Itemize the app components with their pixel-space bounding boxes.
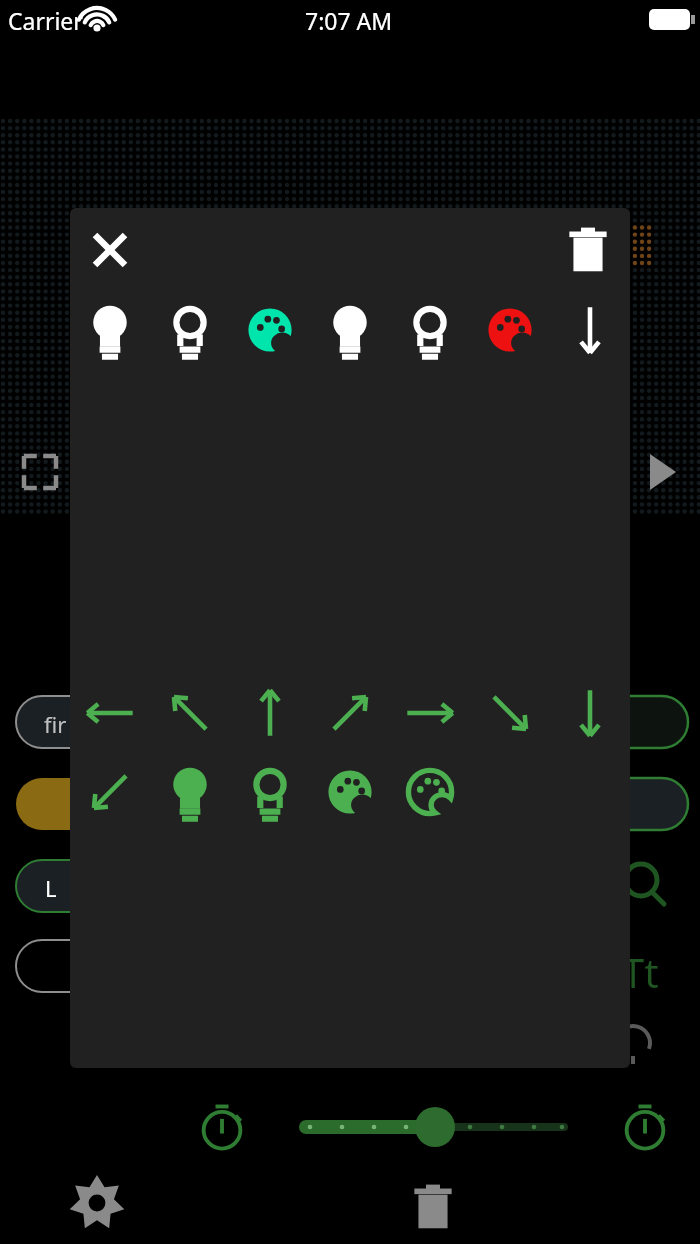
button[interactable]: Arrow 4 [406, 689, 454, 737]
button[interactable]: Delete [564, 226, 612, 274]
button[interactable]: Icon 6 [566, 306, 614, 354]
button[interactable]: Tool 3 [326, 768, 374, 816]
button[interactable]: Tool 1 [166, 768, 214, 816]
button[interactable]: Icon 2 [246, 306, 294, 354]
button[interactable]: Delete all [409, 1183, 457, 1231]
button[interactable]: Arrow 5 [486, 689, 534, 737]
button[interactable]: Timer start [198, 1103, 246, 1151]
staticText: fir [44, 709, 67, 739]
button[interactable]: Timer end [621, 1103, 669, 1151]
button[interactable]: Icon 1 [166, 306, 214, 354]
button[interactable]: Icon 3 [326, 306, 374, 354]
staticText: Carrier [8, 5, 83, 36]
button[interactable]: Icon 0 [86, 306, 134, 354]
button[interactable]: Settings [73, 1179, 121, 1227]
button[interactable]: Close [86, 226, 134, 274]
button[interactable]: Arrow 1 [166, 689, 214, 737]
button[interactable]: Arrow 6 [566, 689, 614, 737]
button[interactable]: Tool 2 [246, 768, 294, 816]
button[interactable]: Tool 0 [86, 768, 134, 816]
button[interactable]: Arrow 0 [86, 689, 134, 737]
button[interactable]: Icon 4 [406, 306, 454, 354]
button[interactable]: Arrow 3 [326, 689, 374, 737]
button[interactable]: Tool 4 [406, 768, 454, 816]
staticText: L [45, 873, 57, 903]
button[interactable]: Icon 5 [486, 306, 534, 354]
staticText: 7:07 AM [305, 5, 393, 36]
staticText: Tt [622, 945, 659, 999]
button[interactable]: Arrow 2 [246, 689, 294, 737]
